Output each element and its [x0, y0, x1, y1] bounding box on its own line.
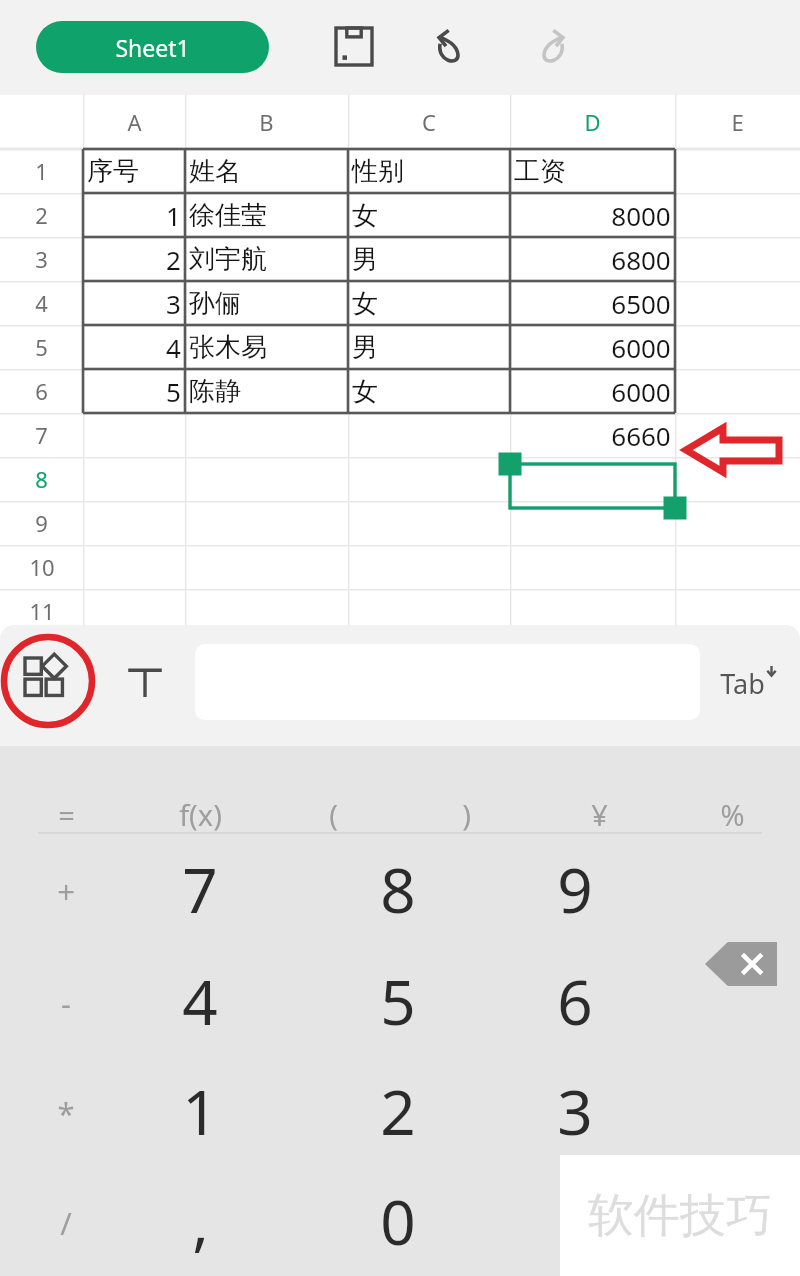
staticText: 7: [35, 420, 48, 450]
staticText: 女: [352, 375, 378, 408]
staticText: 4: [35, 288, 48, 318]
button[interactable]: Undo: [420, 17, 484, 77]
button[interactable]: 女: [352, 281, 506, 325]
staticText: Sheet1: [115, 32, 190, 63]
button[interactable]: 工资: [514, 149, 671, 193]
button[interactable]: 女: [352, 193, 506, 237]
button[interactable]: 1: [87, 193, 181, 237]
button[interactable]: Sheet1: [36, 21, 269, 73]
staticText: 0: [380, 1179, 416, 1263]
button[interactable]: 7: [130, 835, 270, 943]
button[interactable]: C: [348, 95, 510, 149]
staticText: 6000: [611, 374, 671, 409]
staticText: C: [422, 107, 436, 137]
staticText: 徐佳莹: [189, 199, 267, 232]
button[interactable]: 刘宇航: [189, 237, 344, 281]
button[interactable]: *: [8, 1067, 124, 1159]
staticText: 6800: [611, 242, 671, 277]
button[interactable]: =: [8, 778, 124, 850]
button[interactable]: 2: [0, 193, 83, 237]
button[interactable]: 1: [130, 1057, 270, 1165]
button[interactable]: 6000: [514, 369, 671, 413]
button[interactable]: +: [8, 845, 124, 937]
button[interactable]: Redo: [518, 17, 582, 77]
button[interactable]: 张木易: [189, 325, 344, 369]
staticText: %: [720, 795, 745, 834]
button[interactable]: 4: [0, 281, 83, 325]
button[interactable]: ,: [130, 1167, 270, 1275]
staticText: 6500: [611, 286, 671, 321]
button[interactable]: Tab: [708, 653, 790, 713]
button[interactable]: /: [8, 1177, 124, 1269]
button[interactable]: 6: [505, 947, 645, 1055]
staticText: 2: [166, 242, 181, 277]
button[interactable]: 8000: [514, 193, 671, 237]
button[interactable]: 6500: [514, 281, 671, 325]
button[interactable]: 0: [328, 1167, 468, 1275]
button[interactable]: (: [275, 778, 391, 850]
button[interactable]: ¥: [541, 778, 657, 850]
staticText: +: [57, 870, 75, 912]
button[interactable]: 10: [0, 545, 83, 589]
button[interactable]: 2: [87, 237, 181, 281]
button[interactable]: 3: [0, 237, 83, 281]
button[interactable]: 男: [352, 325, 506, 369]
button[interactable]: ): [408, 778, 524, 850]
staticText: 3: [166, 286, 181, 321]
button[interactable]: Text format: [110, 647, 180, 717]
button[interactable]: 6660: [514, 413, 671, 457]
button[interactable]: 5: [0, 325, 83, 369]
staticText: 6: [35, 376, 48, 406]
button[interactable]: 5: [87, 369, 181, 413]
button[interactable]: Backspace: [686, 926, 800, 1002]
staticText: 刘宇航: [189, 243, 267, 276]
button[interactable]: B: [185, 95, 348, 149]
button[interactable]: 4: [130, 947, 270, 1055]
staticText: 姓名: [189, 155, 241, 188]
button[interactable]: E: [675, 95, 800, 149]
button[interactable]: 9: [0, 501, 83, 545]
button[interactable]: 2: [328, 1057, 468, 1165]
staticText: 10: [29, 552, 55, 582]
button[interactable]: %: [674, 778, 790, 850]
button[interactable]: 女: [352, 369, 506, 413]
button[interactable]: 陈静: [189, 369, 344, 413]
button[interactable]: 序号: [87, 149, 181, 193]
button[interactable]: 11: [0, 589, 83, 633]
button[interactable]: D: [510, 95, 675, 149]
staticText: A: [127, 107, 142, 137]
button[interactable]: 8: [0, 457, 83, 501]
button[interactable]: 3: [87, 281, 181, 325]
staticText: 2: [380, 1069, 416, 1153]
button[interactable]: 3: [505, 1057, 645, 1165]
button[interactable]: 徐佳莹: [189, 193, 344, 237]
button[interactable]: 6000: [514, 325, 671, 369]
staticText: 工资: [514, 155, 566, 188]
staticText: =: [58, 795, 75, 834]
button[interactable]: 姓名: [189, 149, 344, 193]
button[interactable]: 8: [328, 835, 468, 943]
staticText: 8000: [611, 198, 671, 233]
button[interactable]: 5: [328, 947, 468, 1055]
button[interactable]: 6: [0, 369, 83, 413]
staticText: 1: [166, 198, 181, 233]
button[interactable]: 4: [87, 325, 181, 369]
button[interactable]: 7: [0, 413, 83, 457]
staticText: E: [731, 107, 744, 137]
staticText: 6: [557, 959, 593, 1043]
button[interactable]: 孙俪: [189, 281, 344, 325]
staticText: 8: [380, 847, 416, 931]
button[interactable]: 男: [352, 237, 506, 281]
staticText: 11: [29, 596, 55, 626]
button[interactable]: Save: [322, 17, 386, 77]
button[interactable]: f(x): [142, 778, 258, 850]
button[interactable]: 9: [505, 835, 645, 943]
button[interactable]: A: [83, 95, 185, 149]
button[interactable]: 性别: [352, 149, 506, 193]
button[interactable]: 1: [0, 149, 83, 193]
button[interactable]: 6800: [514, 237, 671, 281]
button[interactable]: Switch keypad: [12, 645, 84, 717]
staticText: 陈静: [189, 375, 241, 408]
